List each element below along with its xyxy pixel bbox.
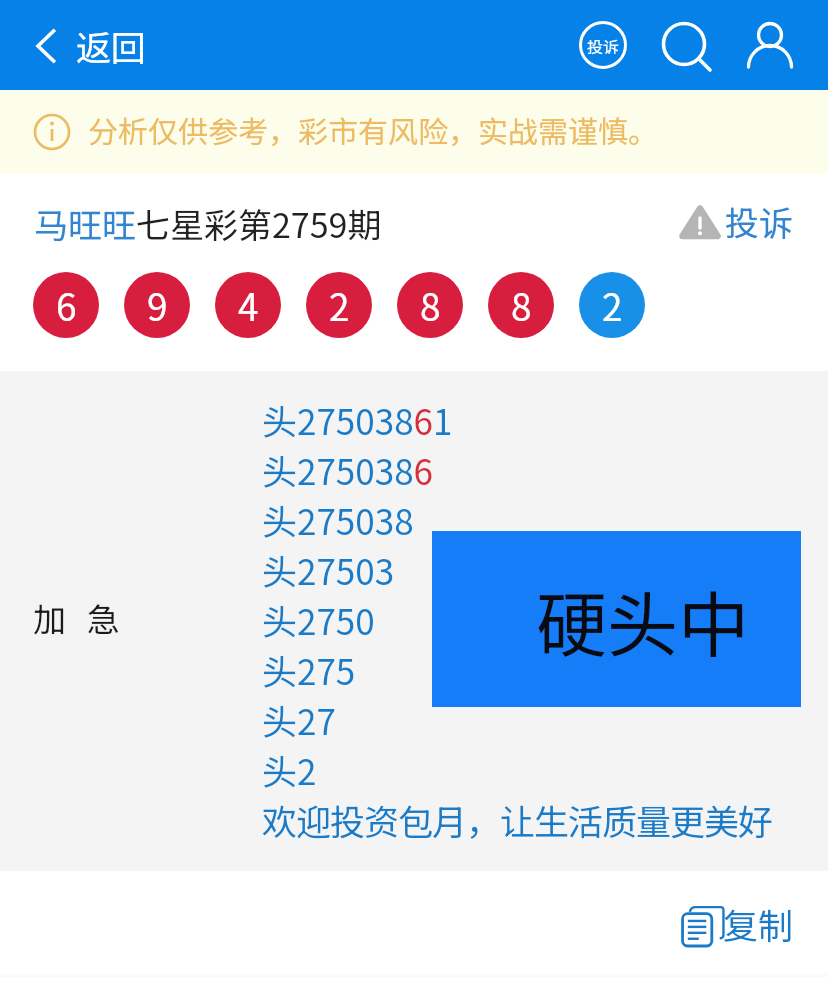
button[interactable]: 硬头中 [432,531,801,707]
staticText: 头2750386 [262,444,433,494]
button[interactable]: 2 [306,272,372,338]
staticText: 2 [602,278,623,332]
staticText: 投诉 [725,197,793,246]
button[interactable]: 投诉 [571,13,635,77]
staticText: 头27503 [262,544,395,594]
button[interactable]: 投诉 [675,193,797,250]
staticText: 9 [147,278,168,332]
button[interactable]: 返回 [0,8,165,83]
button[interactable]: 搜索 [650,13,714,77]
button[interactable]: 8 [488,272,554,338]
staticText: 复制 [723,898,794,949]
button[interactable]: 复制 [668,894,795,953]
staticText: 头2750 [262,594,375,644]
staticText: 加 急 [33,594,122,642]
staticText: 马旺旺七星彩第2759期 [34,199,382,248]
staticText: 8 [511,278,532,332]
button[interactable]: 4 [215,272,281,338]
staticText: 头27 [262,694,336,744]
staticText: 头275 [262,644,356,694]
button[interactable]: 我的 [738,13,802,77]
staticText: 硬头中 [536,569,750,672]
staticText: 4 [238,278,259,332]
staticText: 6 [56,278,77,332]
button[interactable]: 9 [124,272,190,338]
staticText: 分析仅供参考，彩市有风险，实战需谨慎。 [88,108,658,151]
staticText: 头275038 [262,494,414,544]
button[interactable]: 2 [579,272,645,338]
staticText: 头2 [262,744,317,794]
staticText: 欢迎投资包月，让生活质量更美好 [262,794,773,844]
staticText: 8 [420,278,441,332]
button[interactable]: 6 [33,272,99,338]
staticText: 投诉 [587,34,620,57]
staticText: 返回 [76,20,147,71]
staticText: 头27503861 [262,394,453,444]
button[interactable]: 8 [397,272,463,338]
staticText: 2 [329,278,350,332]
